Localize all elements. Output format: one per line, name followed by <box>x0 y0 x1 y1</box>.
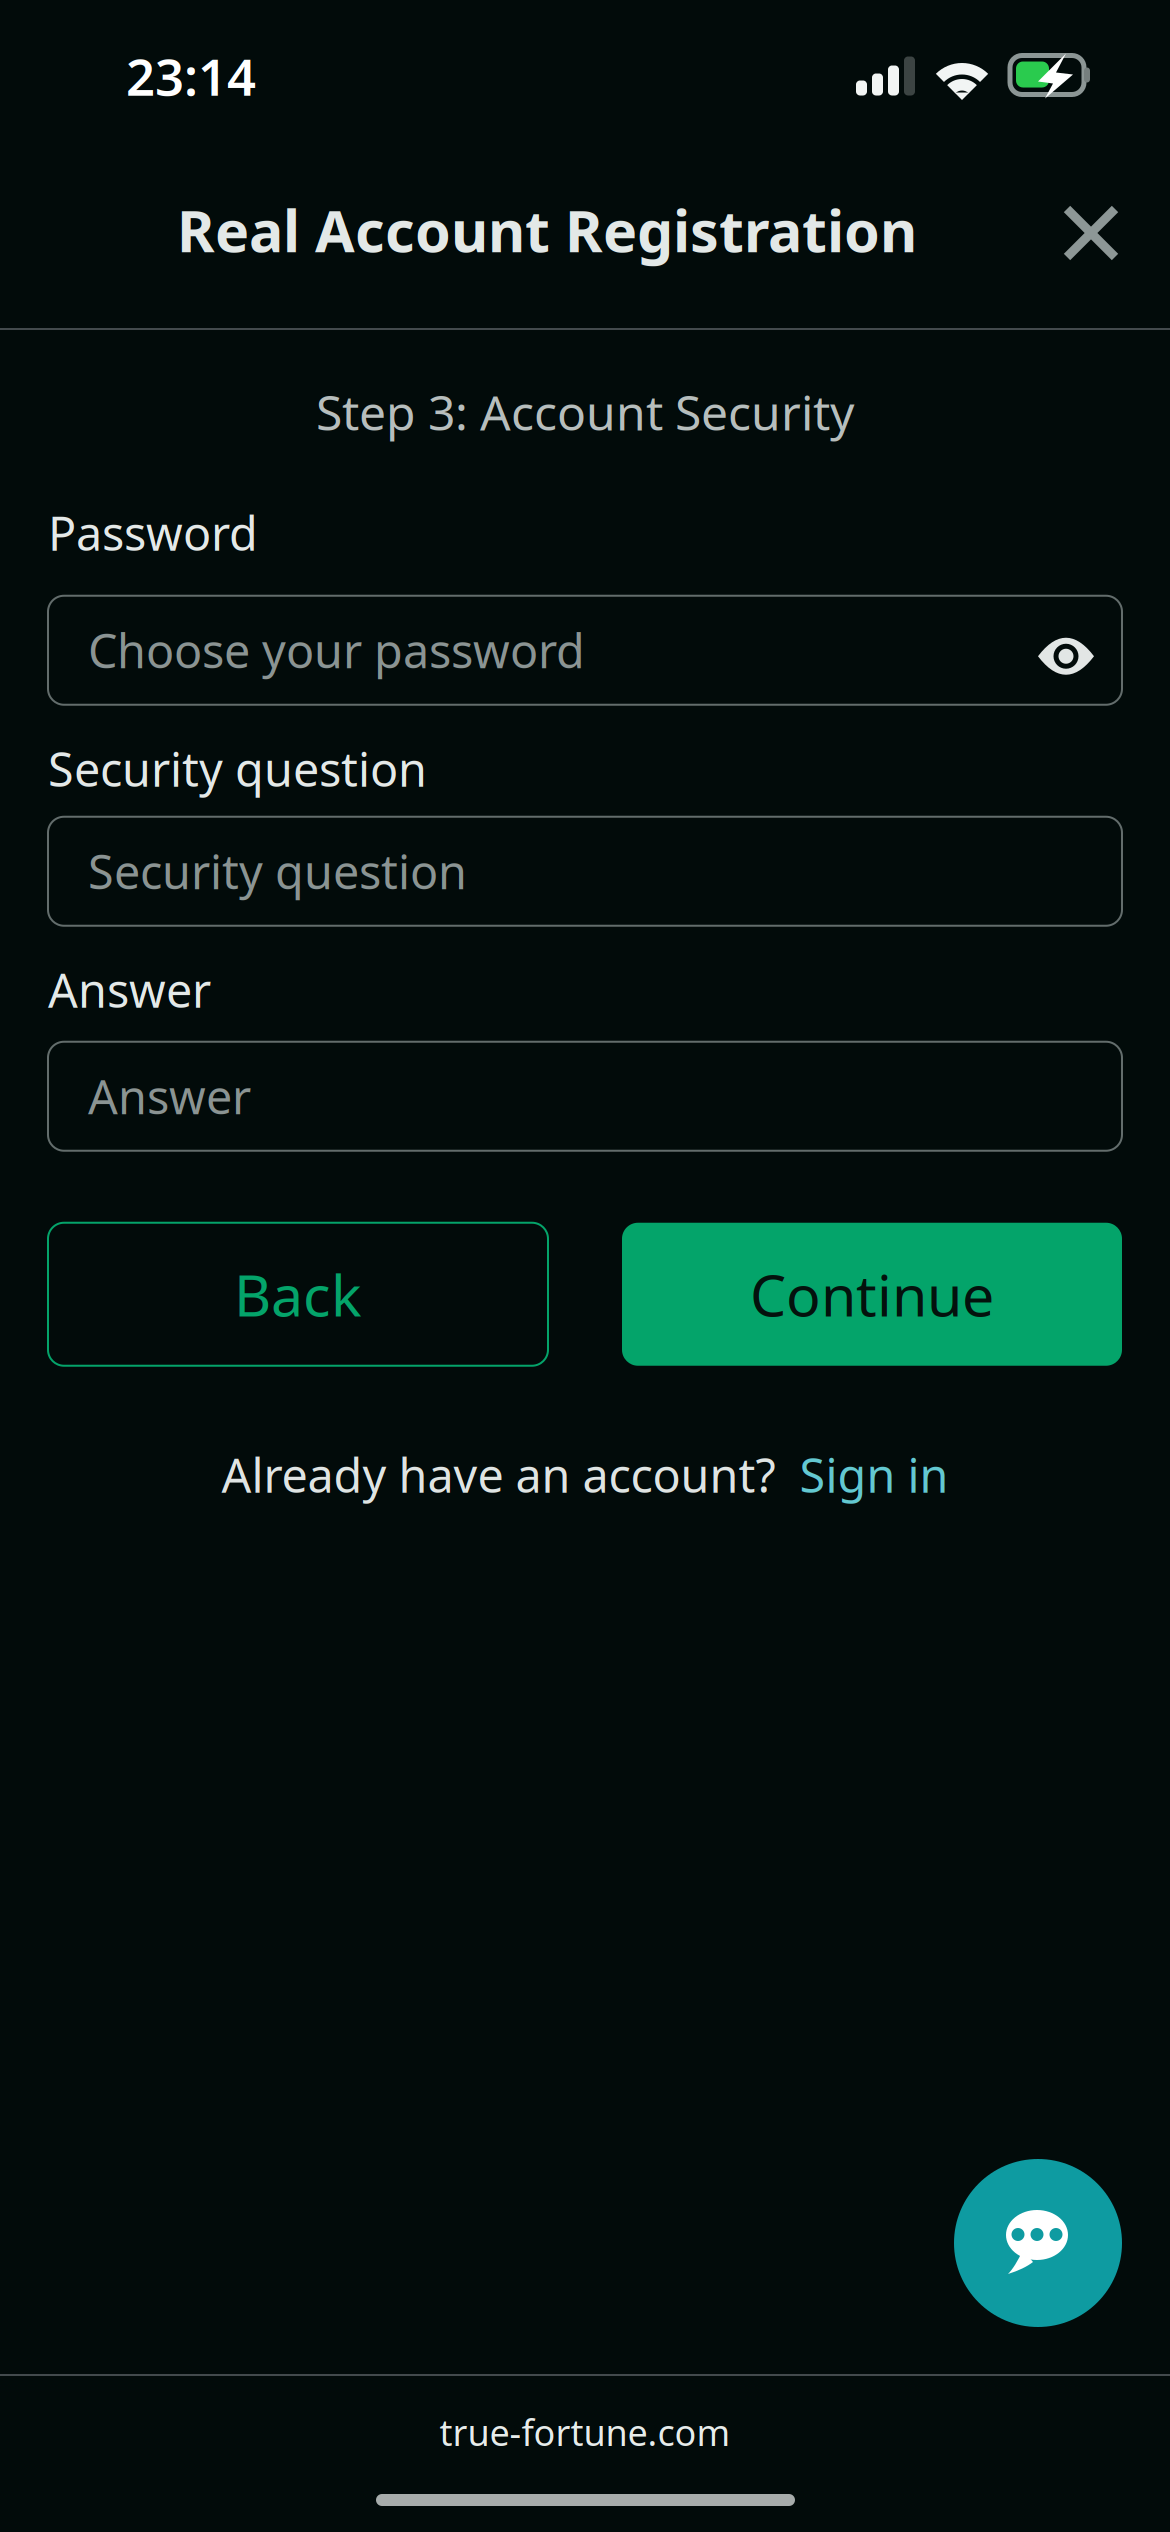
button[interactable]: Continue <box>622 1223 1122 1366</box>
button[interactable]: Close <box>1043 185 1139 281</box>
staticText: Answer <box>88 1065 251 1127</box>
staticText: Answer <box>48 959 211 1021</box>
button[interactable]: Live chat support <box>954 2159 1122 2327</box>
button[interactable]: Back <box>48 1223 548 1366</box>
staticText: 23:14 <box>126 42 256 110</box>
staticText: Step 3: Account Security <box>316 380 854 444</box>
staticText: Back <box>234 1256 362 1332</box>
staticText: Security question <box>88 840 467 902</box>
staticText: Security question <box>48 738 427 800</box>
staticText: Password <box>48 502 258 564</box>
staticText: Real Account Registration <box>177 192 917 268</box>
button[interactable]: Already have an account? <box>221 1447 948 1503</box>
staticText: Already have an account? <box>221 1444 787 1506</box>
staticText: Continue <box>750 1256 994 1332</box>
staticText: true-fortune.com <box>439 2408 730 2456</box>
staticText: Sign in <box>799 1444 948 1506</box>
staticText: Choose your password <box>88 619 585 681</box>
